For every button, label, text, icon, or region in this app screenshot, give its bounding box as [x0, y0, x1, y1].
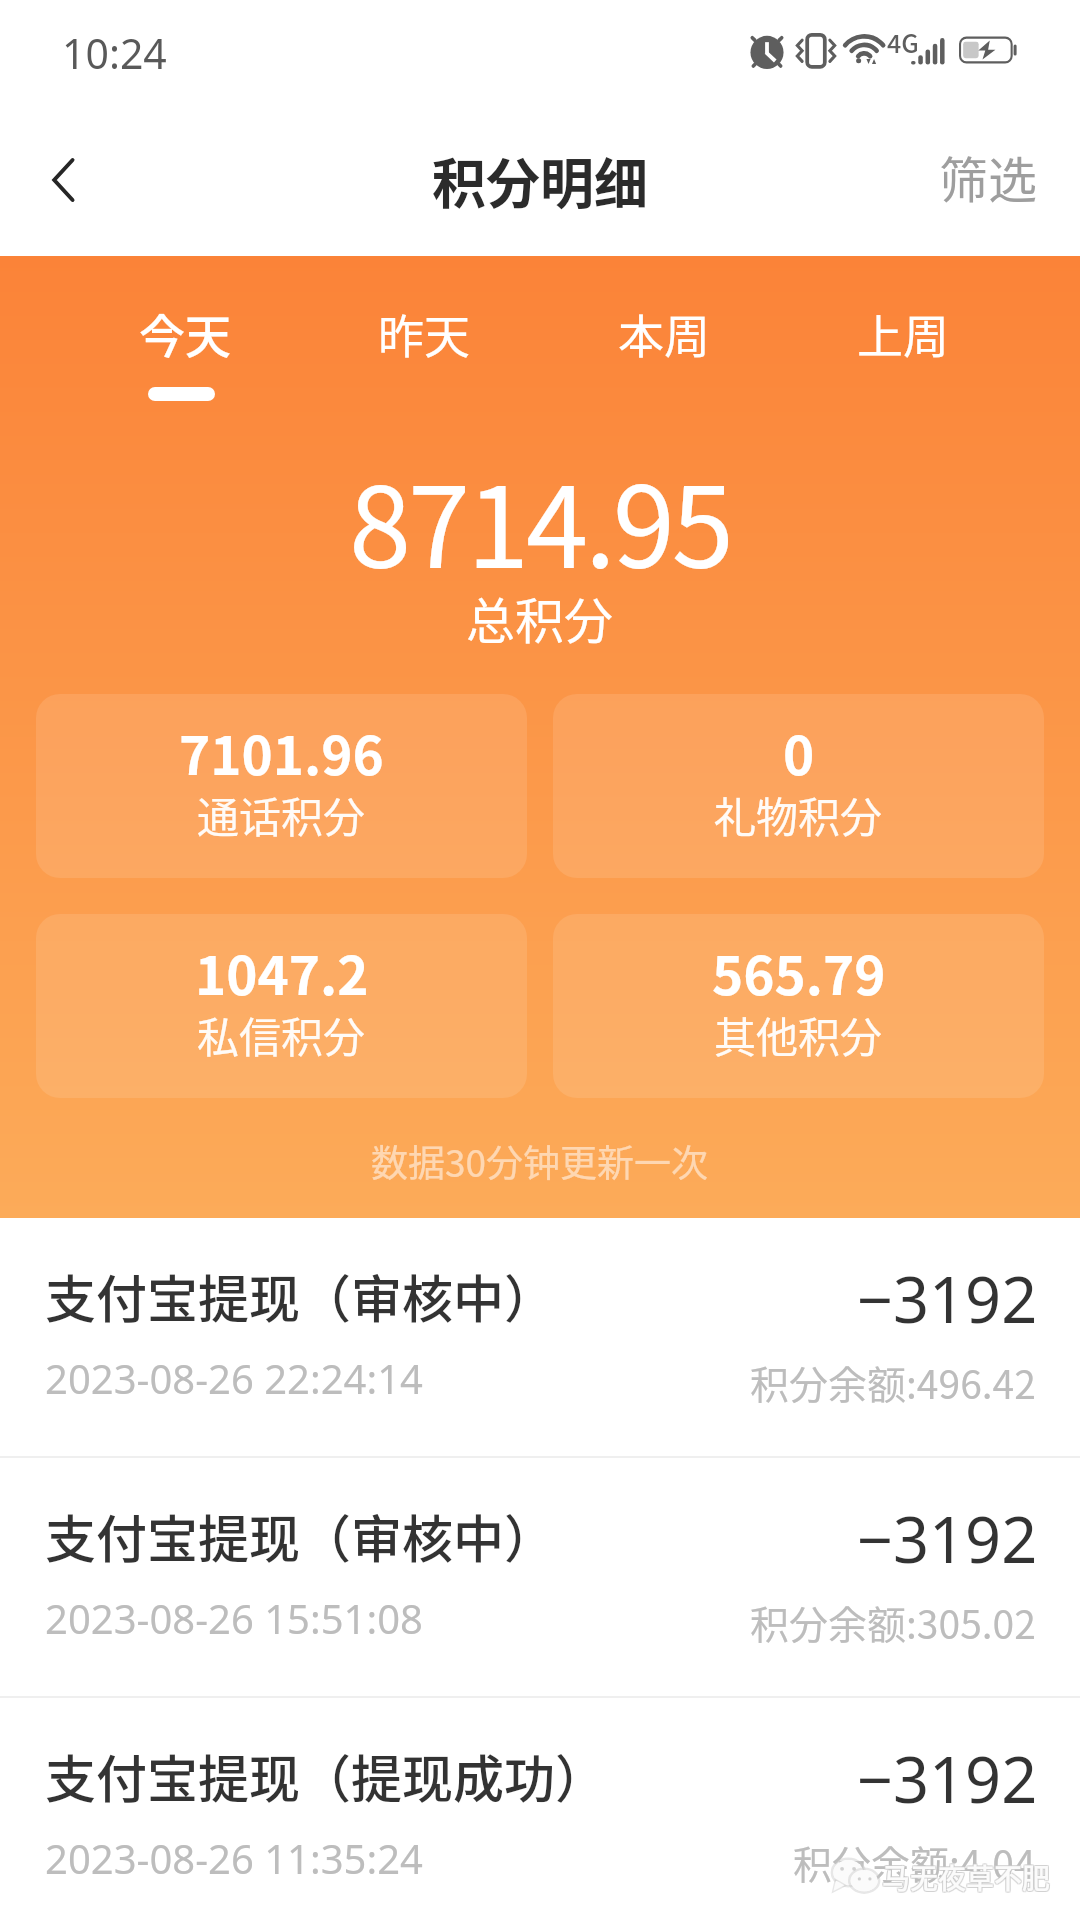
staticText: 其他积分 [714, 1004, 883, 1065]
staticText: 马无夜草不肥 [883, 1858, 1052, 1899]
staticText: 马无夜草不肥 [882, 1856, 1051, 1897]
staticText: 积分余额:496.42 [750, 1354, 1036, 1410]
button[interactable]: 支付宝提现（提现成功） [0, 1698, 1080, 1926]
staticText: 上周 [857, 300, 949, 367]
staticText: 总积分 [466, 582, 614, 653]
button[interactable]: 支付宝提现（审核中） [0, 1458, 1080, 1696]
staticText: 2023-08-26 22:24:14 [45, 1351, 423, 1405]
staticText: 积分余额:305.02 [750, 1594, 1036, 1650]
staticText: 积分余额:4.04 [793, 1834, 1036, 1890]
staticText: 马无夜草不肥 [881, 1858, 1050, 1899]
staticText: 积分明细 [432, 141, 648, 219]
staticText: −3192 [857, 1736, 1038, 1822]
button[interactable]: Back [0, 104, 130, 256]
staticText: 支付宝提现（审核中） [45, 1259, 556, 1333]
staticText: 0 [783, 714, 815, 791]
button[interactable]: 565.79 [553, 914, 1044, 1098]
staticText: 私信积分 [197, 1004, 366, 1065]
button[interactable]: 0 [553, 694, 1044, 878]
staticText: 马无夜草不肥 [881, 1857, 1050, 1898]
staticText: 马无夜草不肥 [883, 1857, 1052, 1898]
staticText: 今天 [139, 300, 231, 367]
staticText: 筛选 [939, 141, 1038, 212]
staticText: −3192 [857, 1496, 1038, 1582]
staticText: 565.79 [712, 934, 886, 1011]
staticText: 马无夜草不肥 [883, 1856, 1052, 1897]
button[interactable]: 支付宝提现（审核中） [0, 1218, 1080, 1456]
staticText: 本周 [618, 300, 710, 367]
staticText: 8714.95 [349, 438, 731, 600]
staticText: 支付宝提现（审核中） [45, 1499, 556, 1573]
button[interactable]: 上周 [845, 294, 961, 407]
staticText: 昨天 [378, 300, 470, 367]
button[interactable]: 本周 [606, 294, 722, 407]
staticText: 数据30分钟更新一次 [371, 1134, 709, 1188]
button[interactable]: 1047.2 [36, 914, 527, 1098]
button[interactable]: 昨天 [366, 294, 482, 407]
staticText: 马无夜草不肥 [882, 1858, 1051, 1899]
staticText: −3192 [857, 1256, 1038, 1342]
button[interactable]: 7101.96 [36, 694, 527, 878]
staticText: 礼物积分 [714, 784, 883, 845]
staticText: 通话积分 [197, 784, 366, 845]
staticText: 10:24 [62, 25, 167, 81]
button[interactable]: 筛选 [900, 104, 1080, 256]
staticText: 4G [887, 24, 919, 60]
staticText: 1047.2 [195, 934, 369, 1011]
button[interactable]: 今天 [127, 294, 243, 407]
staticText: 马无夜草不肥 [881, 1856, 1050, 1897]
staticText: 7101.96 [179, 714, 384, 791]
staticText: 马无夜草不肥 [882, 1857, 1051, 1898]
staticText: 2023-08-26 15:51:08 [45, 1591, 423, 1645]
staticText: 2023-08-26 11:35:24 [45, 1831, 423, 1885]
staticText: 支付宝提现（提现成功） [45, 1739, 607, 1813]
